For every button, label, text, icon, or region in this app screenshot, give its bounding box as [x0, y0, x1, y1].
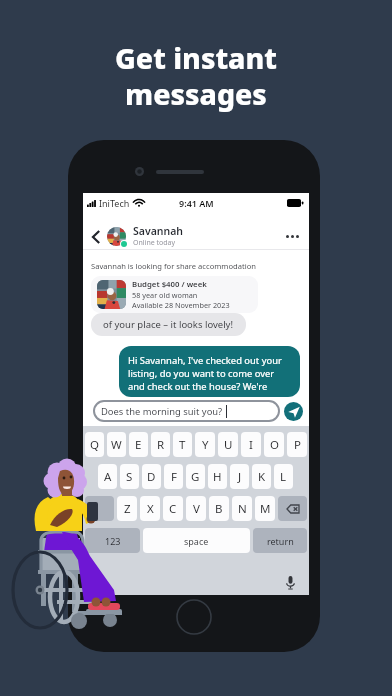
staticText: 58 year old woman: [132, 290, 198, 300]
staticText: S: [126, 469, 133, 485]
button[interactable]: T: [173, 432, 192, 457]
button[interactable]: 123: [85, 528, 140, 553]
staticText: Savannah is looking for share accommodat…: [91, 261, 256, 271]
staticText: IniTech: [99, 197, 130, 209]
button[interactable]: B: [209, 496, 229, 521]
staticText: P: [294, 437, 301, 453]
staticText: C: [169, 501, 177, 517]
staticText: W: [111, 437, 122, 453]
button[interactable]: X: [140, 496, 160, 521]
button[interactable]: Y: [195, 432, 215, 457]
staticText: Budget $400 / week: [132, 279, 207, 290]
button[interactable]: More options: [282, 226, 302, 246]
button[interactable]: A: [98, 464, 117, 489]
button[interactable]: Shift: [85, 496, 114, 521]
staticText: Y: [202, 437, 209, 453]
staticText: Available 28 November 2023: [132, 300, 230, 310]
staticText: N: [238, 501, 247, 517]
button[interactable]: R: [151, 432, 170, 457]
staticText: U: [224, 437, 233, 453]
staticText: K: [258, 469, 266, 485]
button[interactable]: E: [129, 432, 148, 457]
staticText: L: [280, 469, 287, 485]
staticText: H: [213, 469, 222, 485]
button[interactable]: Back: [87, 228, 104, 245]
staticText: O: [270, 437, 279, 453]
button[interactable]: I: [241, 432, 261, 457]
button[interactable]: W: [107, 432, 126, 457]
button[interactable]: N: [232, 496, 252, 521]
staticText: G: [191, 469, 200, 485]
staticText: Hi Savannah, I've checked out your listi…: [128, 354, 291, 391]
button[interactable]: Backspace: [278, 496, 307, 521]
button[interactable]: G: [186, 464, 205, 489]
staticText: X: [147, 501, 154, 517]
button[interactable]: return: [253, 528, 307, 553]
staticText: of your place – it looks lovely!: [103, 318, 234, 331]
button[interactable]: space: [143, 528, 250, 553]
button[interactable]: J: [230, 464, 249, 489]
button[interactable]: C: [163, 496, 183, 521]
staticText: R: [157, 437, 165, 453]
button[interactable]: H: [208, 464, 227, 489]
staticText: return: [267, 535, 294, 547]
button[interactable]: Budget $400 / week: [97, 279, 252, 310]
staticText: D: [147, 469, 156, 485]
staticText: Online today: [133, 238, 176, 248]
staticText: M: [260, 501, 271, 517]
staticText: Get instant messages: [115, 39, 277, 114]
button[interactable]: K: [252, 464, 271, 489]
button[interactable]: Does the morning suit you?: [101, 400, 272, 422]
button[interactable]: D: [142, 464, 161, 489]
button[interactable]: Send: [284, 402, 303, 421]
button[interactable]: Dictate: [281, 573, 299, 591]
staticText: V: [193, 501, 200, 517]
button[interactable]: U: [218, 432, 238, 457]
staticText: B: [215, 501, 223, 517]
staticText: 123: [105, 535, 121, 547]
button[interactable]: M: [255, 496, 275, 521]
staticText: Z: [124, 501, 131, 517]
staticText: space: [184, 535, 209, 547]
staticText: F: [171, 469, 177, 485]
staticText: 9:41 AM: [179, 197, 214, 209]
staticText: Does the morning suit you?: [101, 405, 223, 418]
staticText: I: [249, 437, 253, 453]
staticText: T: [179, 437, 186, 453]
staticText: J: [238, 469, 242, 485]
button[interactable]: L: [274, 464, 293, 489]
button[interactable]: O: [264, 432, 284, 457]
button[interactable]: Z: [117, 496, 137, 521]
button[interactable]: F: [164, 464, 183, 489]
staticText: Q: [90, 437, 99, 453]
staticText: A: [104, 469, 112, 485]
button[interactable]: V: [186, 496, 206, 521]
button[interactable]: S: [120, 464, 139, 489]
staticText: Savannah: [133, 224, 184, 238]
button[interactable]: P: [287, 432, 307, 457]
staticText: E: [135, 437, 142, 453]
button[interactable]: Q: [85, 432, 104, 457]
